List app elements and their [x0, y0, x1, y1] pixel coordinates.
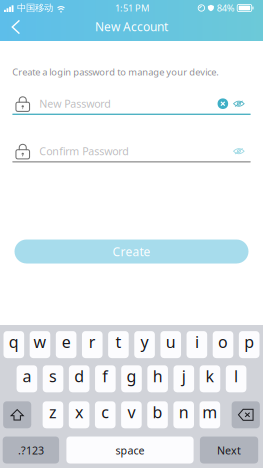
- staticText: 1:51 PM: [115, 2, 149, 14]
- staticText: u: [166, 331, 176, 352]
- button[interactable]: f: [95, 365, 116, 392]
- staticText: x: [75, 401, 83, 423]
- button[interactable]: space: [66, 436, 194, 463]
- staticText: a: [22, 365, 31, 387]
- button[interactable]: h: [147, 365, 168, 392]
- staticText: 中国移动: [17, 2, 53, 14]
- staticText: t: [115, 331, 121, 352]
- button[interactable]: Clear text: [218, 98, 233, 109]
- staticText: w: [33, 331, 46, 352]
- button[interactable]: u: [160, 331, 181, 358]
- staticText: p: [244, 331, 254, 352]
- button[interactable]: Back: [0, 15, 32, 41]
- button[interactable]: y: [134, 331, 155, 358]
- button[interactable]: d: [69, 365, 89, 392]
- button[interactable]: c: [95, 401, 116, 428]
- button[interactable]: .?123: [3, 436, 59, 463]
- button[interactable]: b: [147, 401, 168, 428]
- button[interactable]: l: [226, 365, 246, 392]
- button[interactable]: p: [239, 331, 259, 358]
- staticText: Next: [217, 443, 241, 457]
- staticText: b: [153, 401, 163, 423]
- button[interactable]: Shift: [3, 401, 31, 428]
- button[interactable]: x: [69, 401, 89, 428]
- staticText: Create a login password to manage your d…: [12, 66, 219, 78]
- staticText: z: [49, 401, 57, 423]
- staticText: f: [102, 365, 108, 387]
- staticText: 84%: [217, 2, 235, 14]
- button[interactable]: r: [82, 331, 103, 358]
- button[interactable]: s: [43, 365, 63, 392]
- button[interactable]: i: [187, 331, 207, 358]
- staticText: l: [234, 365, 238, 387]
- staticText: i: [195, 331, 199, 352]
- button[interactable]: Next: [200, 436, 258, 463]
- staticText: o: [218, 331, 228, 352]
- staticText: q: [9, 331, 19, 352]
- staticText: m: [202, 401, 217, 423]
- button[interactable]: Show password: [233, 100, 245, 107]
- staticText: v: [127, 401, 135, 423]
- staticText: r: [89, 331, 96, 352]
- button[interactable]: n: [173, 401, 194, 428]
- staticText: New Password: [39, 97, 111, 111]
- staticText: n: [179, 401, 189, 423]
- button[interactable]: e: [56, 331, 76, 358]
- button[interactable]: z: [43, 401, 63, 428]
- button[interactable]: a: [17, 365, 37, 392]
- button[interactable]: w: [30, 331, 50, 358]
- staticText: c: [101, 401, 109, 423]
- staticText: k: [205, 365, 214, 387]
- staticText: Create: [112, 243, 150, 259]
- staticText: New Account: [95, 18, 168, 34]
- staticText: e: [62, 331, 71, 352]
- button[interactable]: k: [200, 365, 220, 392]
- button[interactable]: t: [108, 331, 129, 358]
- staticText: Confirm Password: [39, 144, 129, 158]
- staticText: .?123: [18, 443, 44, 457]
- staticText: g: [126, 365, 136, 387]
- button[interactable]: Create: [14, 239, 248, 263]
- button[interactable]: j: [173, 365, 194, 392]
- button[interactable]: v: [121, 401, 142, 428]
- staticText: y: [141, 331, 149, 352]
- staticText: d: [74, 365, 84, 387]
- button[interactable]: Show password: [233, 148, 245, 155]
- button[interactable]: Delete: [232, 401, 260, 428]
- staticText: j: [182, 365, 186, 387]
- button[interactable]: m: [200, 401, 220, 428]
- button[interactable]: o: [213, 331, 233, 358]
- staticText: space: [115, 443, 144, 457]
- button[interactable]: q: [3, 331, 24, 358]
- button[interactable]: g: [121, 365, 142, 392]
- staticText: s: [49, 365, 57, 387]
- staticText: h: [153, 365, 163, 387]
